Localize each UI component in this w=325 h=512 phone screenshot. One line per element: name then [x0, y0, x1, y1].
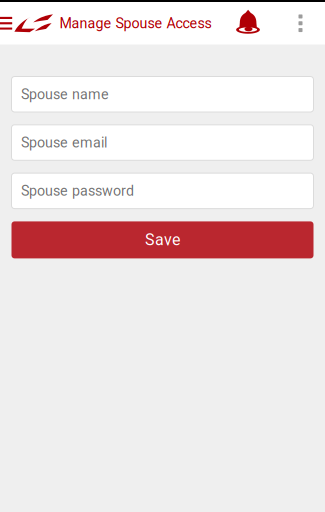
button[interactable]: Spouse email	[11, 125, 313, 160]
button[interactable]: Home	[9, 2, 53, 44]
staticText: Spouse password	[21, 182, 134, 199]
button[interactable]: Spouse password	[11, 173, 313, 209]
staticText: Save	[145, 230, 180, 249]
staticText: Spouse email	[21, 134, 107, 151]
button[interactable]: More options	[276, 2, 325, 44]
button[interactable]: Notifications	[220, 2, 276, 44]
staticText: Manage Spouse Access	[59, 15, 211, 32]
staticText: Spouse name	[21, 86, 109, 103]
button[interactable]: Menu	[0, 2, 9, 44]
button[interactable]: Spouse name	[11, 76, 313, 112]
button[interactable]: Save	[11, 221, 313, 258]
